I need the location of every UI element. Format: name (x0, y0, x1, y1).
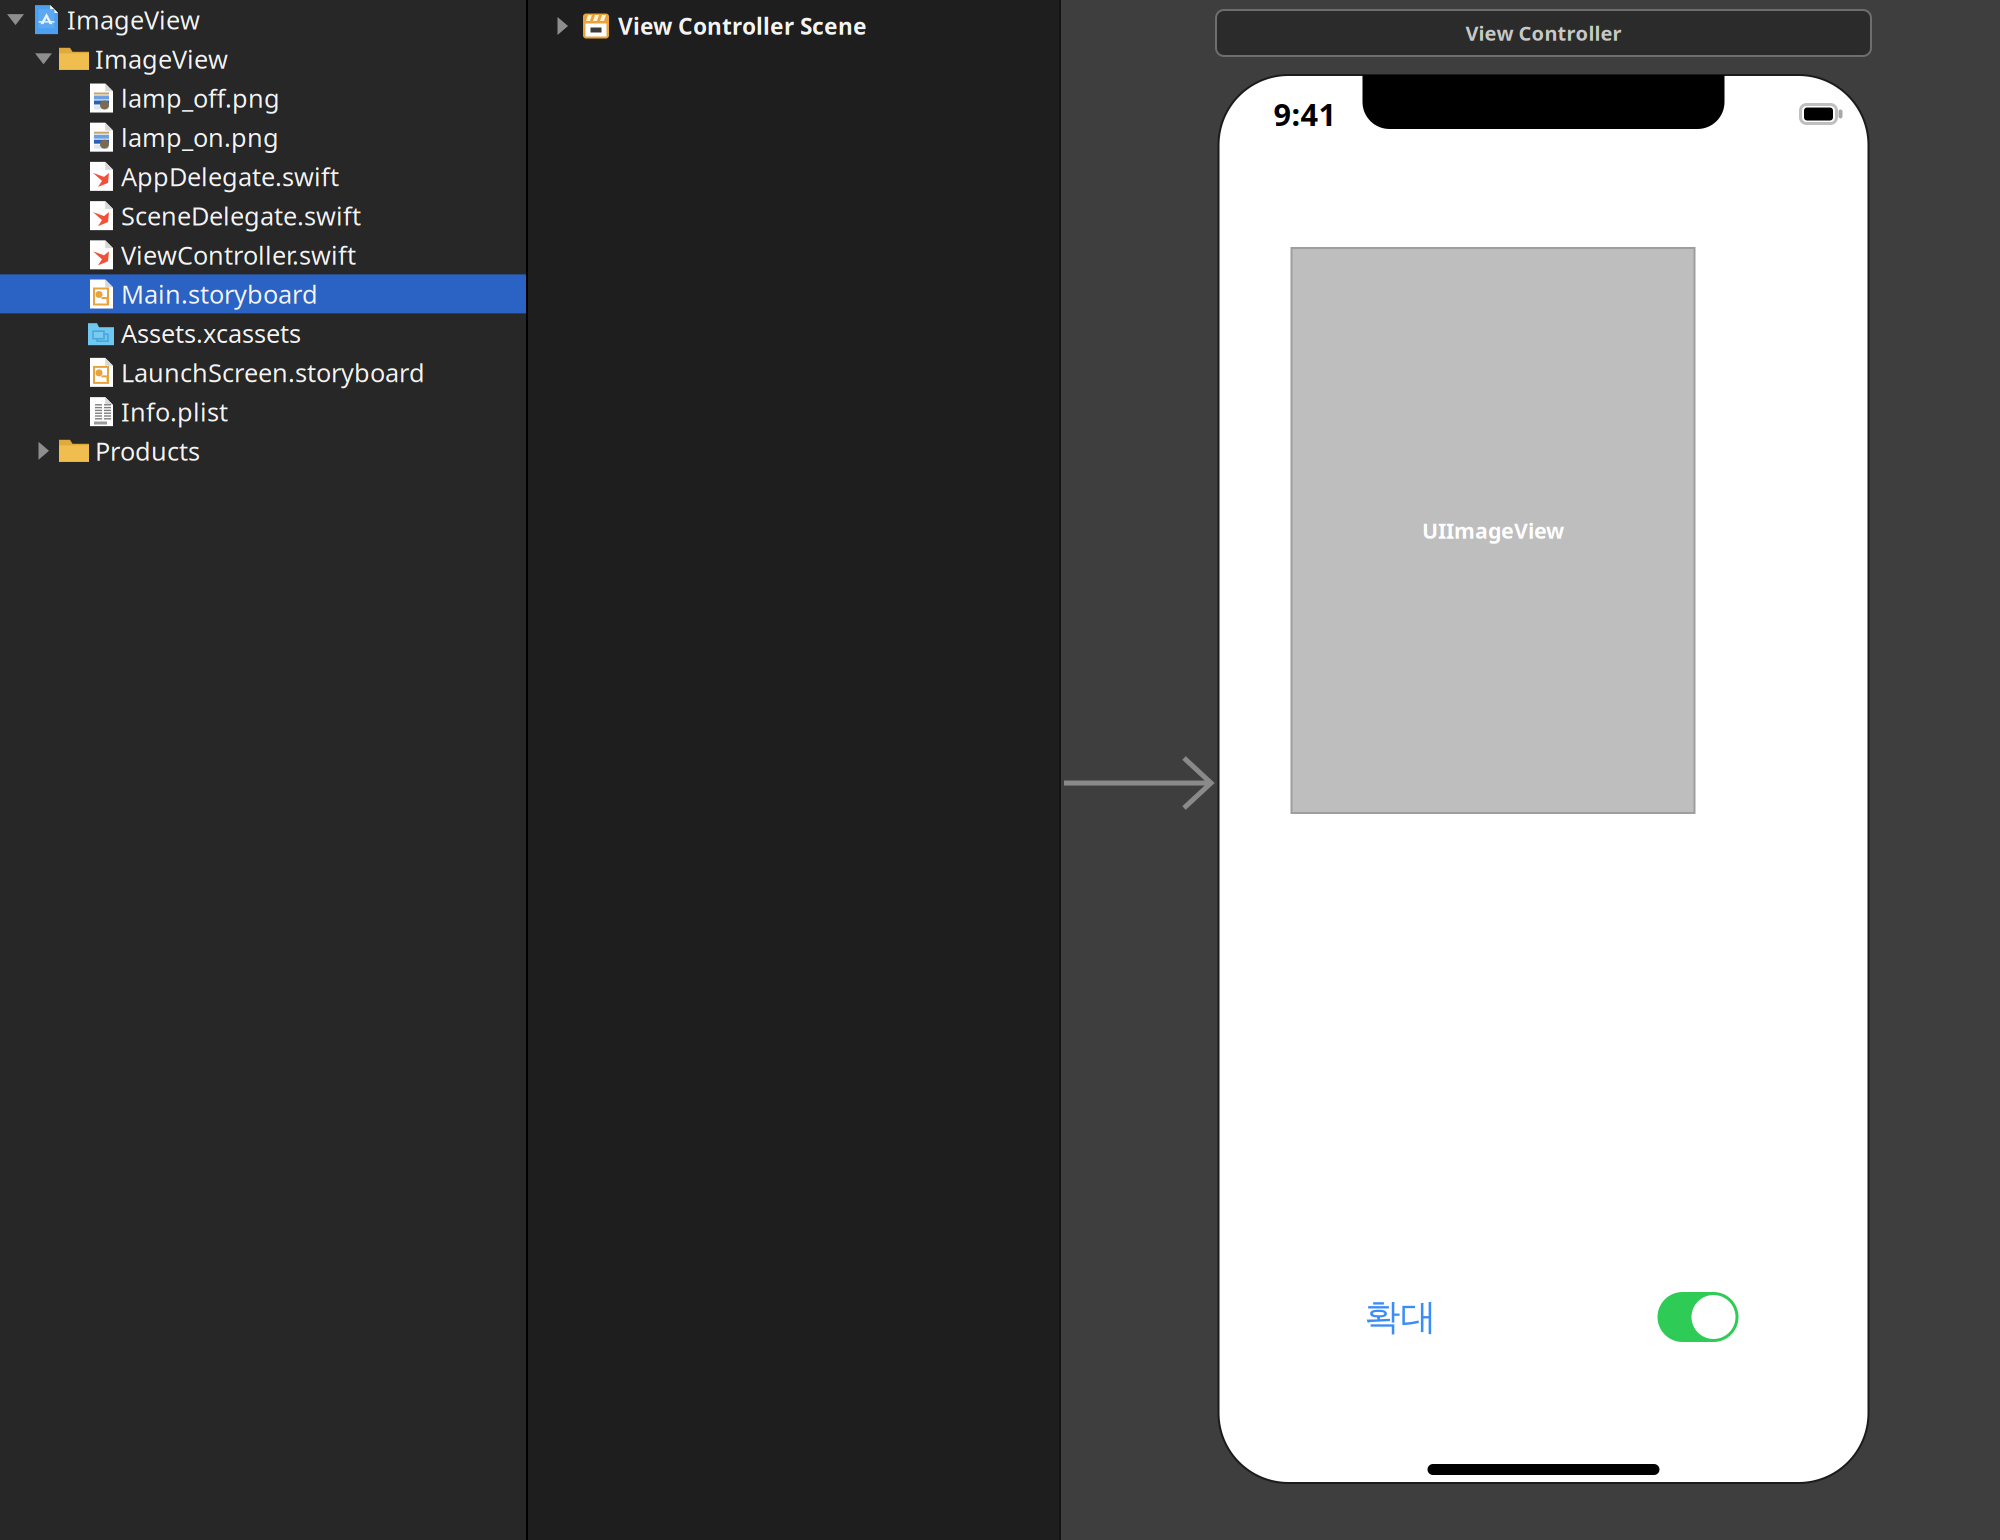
staticText: lamp_off.png (121, 81, 280, 115)
staticText: Info.plist (121, 395, 228, 428)
button[interactable]: 확대 (1364, 1295, 1436, 1339)
staticText: 확대 (1364, 1295, 1436, 1339)
staticText: AppDelegate.swift (121, 160, 339, 193)
staticText: Products (95, 434, 200, 468)
staticText: UIImageView (1422, 516, 1564, 545)
button[interactable]: LaunchScreen.storyboard (0, 353, 526, 392)
staticText: Main.storyboard (121, 277, 318, 311)
staticText: View Controller Scene (618, 11, 867, 41)
staticText: ImageView (67, 3, 200, 36)
button[interactable]: 확대 toggle, on (1657, 1292, 1738, 1342)
staticText: View Controller (1465, 20, 1621, 46)
staticText: lamp_on.png (121, 120, 279, 154)
button[interactable]: lamp_off.png (0, 78, 526, 118)
button[interactable]: View Controller (1216, 10, 1871, 56)
button[interactable]: View Controller Scene (528, 0, 1059, 52)
staticText: Assets.xcassets (121, 316, 301, 350)
button[interactable]: Products (0, 431, 526, 470)
button[interactable]: ImageView (0, 39, 526, 78)
button[interactable]: AppDelegate.swift (0, 157, 526, 196)
staticText: ImageView (95, 42, 228, 76)
staticText: ViewController.swift (121, 238, 356, 272)
button[interactable]: Info.plist (0, 392, 526, 431)
button[interactable]: Main.storyboard (0, 274, 526, 314)
button[interactable]: SceneDelegate.swift (0, 196, 526, 235)
button[interactable]: Assets.xcassets (0, 314, 526, 353)
button[interactable]: ViewController.swift (0, 235, 526, 274)
staticText: 9:41 (1273, 94, 1336, 134)
staticText: LaunchScreen.storyboard (121, 356, 425, 389)
button[interactable]: ImageView (0, 0, 526, 39)
button[interactable]: UIImageView (1291, 248, 1694, 813)
staticText: SceneDelegate.swift (121, 199, 361, 232)
button[interactable]: lamp_on.png (0, 118, 526, 157)
